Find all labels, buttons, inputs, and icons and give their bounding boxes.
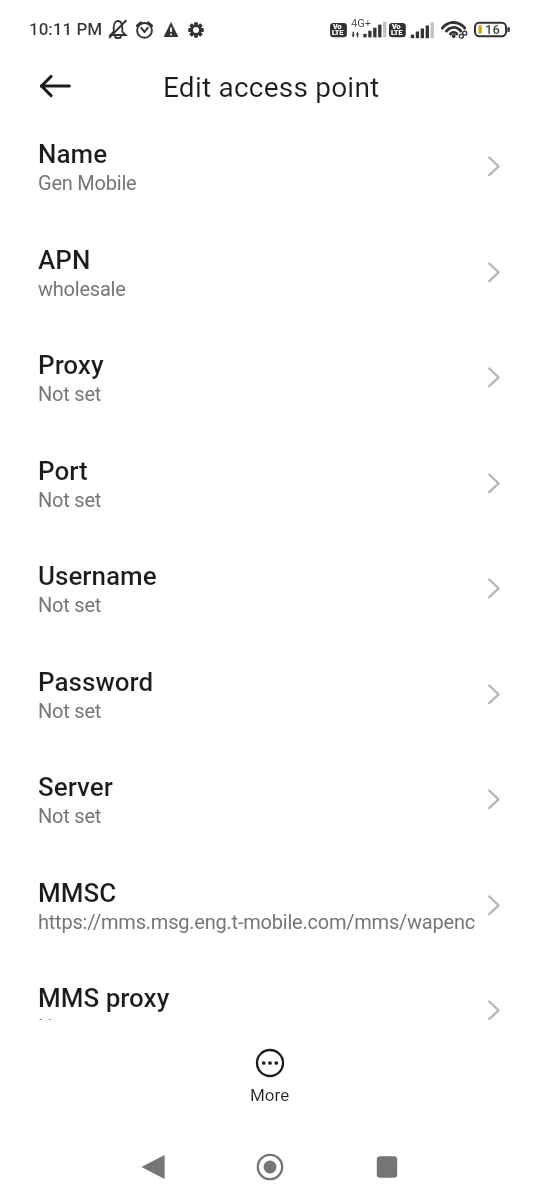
button[interactable]: More [250, 1049, 290, 1105]
staticText: Password [38, 667, 154, 697]
staticText: MMSC [38, 878, 117, 908]
staticText: 4G+ [351, 17, 371, 30]
button[interactable]: Recent apps [363, 1143, 411, 1191]
staticText: Not set [38, 699, 540, 722]
staticText: Name [38, 139, 108, 169]
staticText: Username [38, 561, 157, 591]
button[interactable]: Proxy [0, 341, 540, 446]
staticText: Not set [38, 593, 540, 616]
button[interactable]: APN [0, 236, 540, 341]
staticText: Server [38, 772, 113, 802]
staticText: Port [38, 456, 88, 486]
button[interactable]: Home [246, 1143, 294, 1191]
staticText: wholesale [38, 277, 540, 300]
button[interactable]: Username [0, 552, 540, 657]
staticText: Vo [392, 23, 401, 31]
button[interactable]: Server [0, 763, 540, 868]
staticText: MMS proxy [38, 983, 170, 1013]
staticText: Not set [38, 1015, 540, 1038]
button[interactable]: Name [0, 130, 540, 235]
staticText: 16 [485, 22, 500, 37]
staticText: Vo [333, 23, 342, 31]
staticText: Not set [38, 488, 540, 511]
button[interactable]: Password [0, 658, 540, 763]
button[interactable]: Back [129, 1143, 177, 1191]
staticText: 10:11 PM [29, 19, 103, 39]
staticText: LTE [332, 29, 344, 37]
staticText: Gen Mobile [38, 171, 540, 194]
staticText: LTE [391, 29, 403, 37]
staticText: More [250, 1085, 290, 1105]
staticText: Not set [38, 804, 540, 827]
staticText: APN [38, 245, 91, 275]
staticText: https://mms.msg.eng.t-mobile.com/mms/wap… [38, 910, 540, 933]
button[interactable]: MMSC [0, 869, 540, 974]
button[interactable]: MMS proxy [0, 974, 540, 1079]
staticText: Proxy [38, 350, 104, 380]
button[interactable]: Navigate up [30, 60, 82, 112]
button[interactable]: Port [0, 447, 540, 552]
staticText: Edit access point [163, 71, 380, 104]
staticText: Not set [38, 382, 540, 405]
